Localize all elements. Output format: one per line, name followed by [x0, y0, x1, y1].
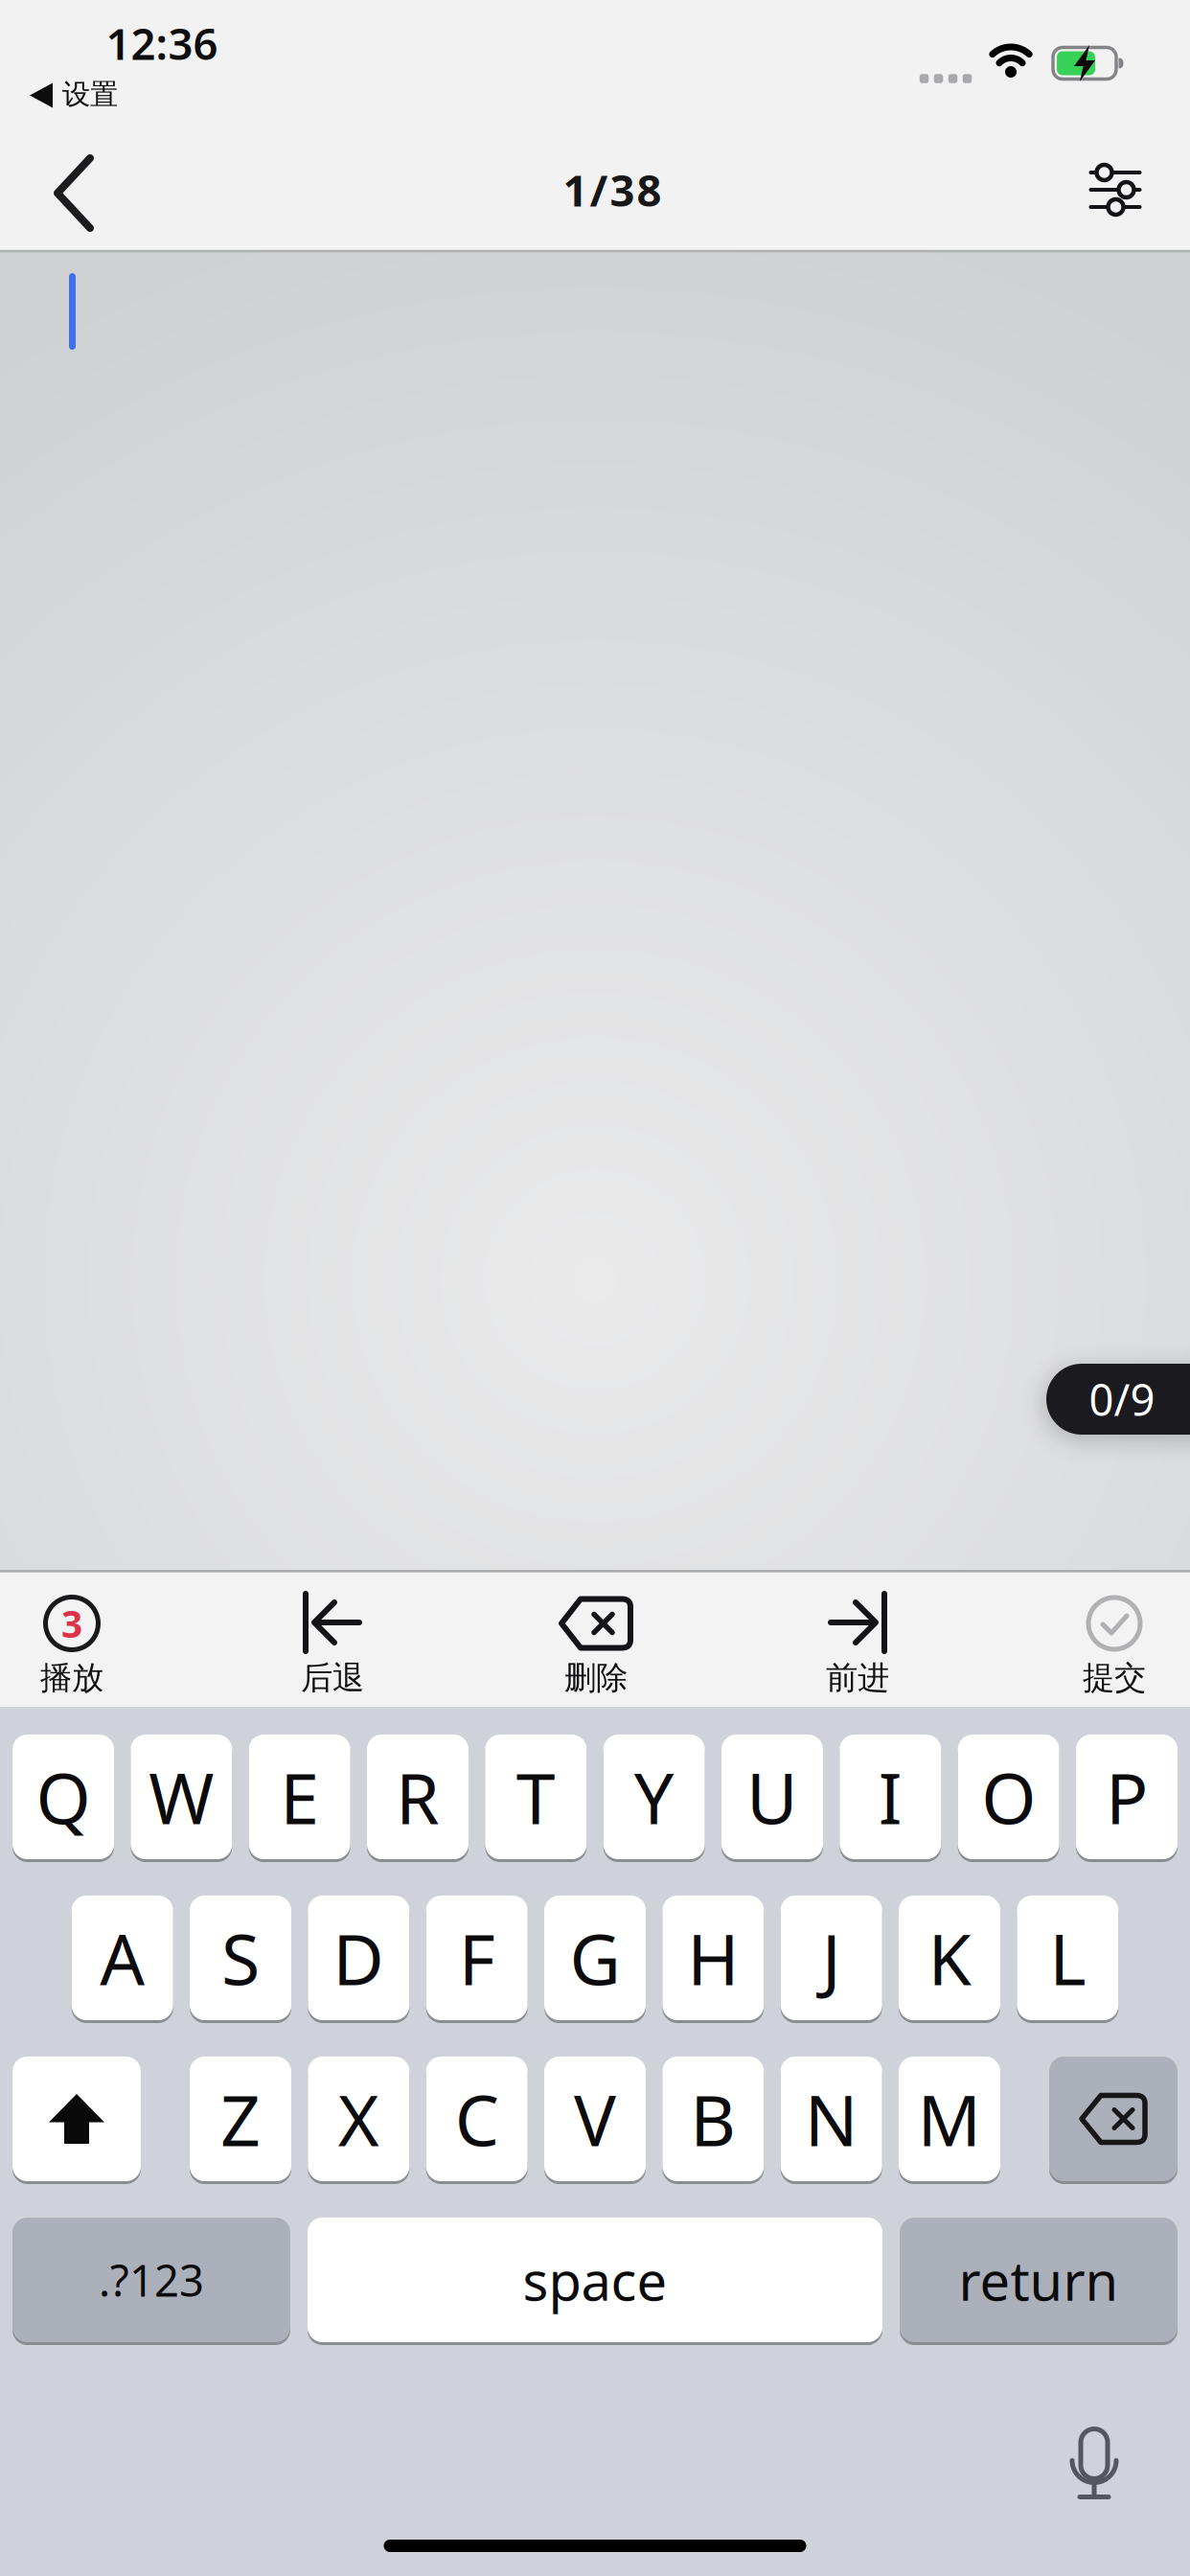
staticText: L	[1049, 1911, 1086, 2005]
button[interactable]: A	[72, 1896, 173, 2020]
button[interactable]: C	[426, 2057, 528, 2181]
button[interactable]: 前进	[767, 1572, 949, 1706]
staticText: M	[917, 2072, 982, 2166]
button[interactable]: Shift	[12, 2057, 141, 2181]
staticText: N	[804, 2072, 858, 2166]
button[interactable]: Dictation	[1072, 2429, 1116, 2499]
staticText: P	[1106, 1750, 1148, 1844]
button[interactable]: H	[662, 1896, 764, 2020]
staticText: U	[746, 1750, 798, 1844]
staticText: Q	[36, 1750, 91, 1844]
button[interactable]: return	[900, 2218, 1178, 2342]
staticText: 3	[61, 1599, 82, 1648]
staticText: A	[100, 1911, 145, 2005]
button[interactable]: R	[367, 1735, 469, 1859]
button[interactable]: J	[781, 1896, 882, 2020]
staticText: 0/9	[1089, 1370, 1155, 1428]
staticText: 前进	[826, 1658, 889, 1698]
staticText: K	[928, 1911, 971, 2005]
button[interactable]: B	[662, 2057, 764, 2181]
button[interactable]: D	[308, 1896, 410, 2020]
button[interactable]: V	[544, 2057, 646, 2181]
button[interactable]: 后退	[241, 1572, 423, 1706]
staticText: H	[687, 1911, 739, 2005]
button[interactable]: U	[721, 1735, 823, 1859]
staticText: 播放	[40, 1658, 103, 1698]
button[interactable]: N	[780, 2057, 882, 2181]
staticText: 设置	[62, 77, 118, 112]
staticText: space	[523, 2244, 667, 2316]
button[interactable]: .?123	[12, 2218, 290, 2342]
button[interactable]: L	[1017, 1896, 1118, 2020]
staticText: X	[338, 2072, 379, 2166]
button[interactable]: 设置选项	[1091, 168, 1140, 212]
staticText: D	[333, 1911, 385, 2005]
staticText: R	[396, 1750, 440, 1844]
staticText: return	[959, 2244, 1119, 2316]
button[interactable]: O	[958, 1735, 1059, 1859]
staticText: 1/38	[563, 161, 662, 219]
button[interactable]: T	[485, 1735, 587, 1859]
button[interactable]: 删除	[505, 1572, 687, 1706]
staticText: V	[574, 2072, 616, 2166]
staticText: C	[455, 2072, 499, 2166]
button[interactable]: Y	[603, 1735, 705, 1859]
staticText: S	[221, 1911, 260, 2005]
staticText: 12:36	[106, 14, 218, 72]
staticText: G	[570, 1911, 620, 2005]
button[interactable]: Q	[12, 1735, 114, 1859]
button[interactable]: I	[840, 1735, 941, 1859]
staticText: E	[280, 1750, 319, 1844]
staticText: 提交	[1083, 1658, 1146, 1698]
button[interactable]: 返回	[57, 158, 92, 229]
button[interactable]: G	[544, 1896, 646, 2020]
button[interactable]: 返回设置	[26, 81, 126, 108]
staticText: 删除	[564, 1658, 628, 1698]
button[interactable]: S	[190, 1896, 291, 2020]
button[interactable]: X	[308, 2057, 409, 2181]
staticText: .?123	[99, 2251, 204, 2309]
button[interactable]: space	[308, 2218, 882, 2342]
staticText: J	[822, 1911, 841, 2005]
staticText: T	[516, 1750, 556, 1844]
staticText: Y	[634, 1750, 674, 1844]
button[interactable]: M	[899, 2057, 1000, 2181]
staticText: B	[690, 2072, 736, 2166]
button[interactable]: 提交	[1023, 1572, 1190, 1706]
staticText: 后退	[301, 1658, 364, 1698]
staticText: I	[878, 1750, 902, 1844]
button[interactable]: P	[1076, 1735, 1178, 1859]
button[interactable]: W	[131, 1735, 232, 1859]
button[interactable]: K	[899, 1896, 1000, 2020]
staticText: F	[459, 1911, 495, 2005]
button[interactable]: F	[426, 1896, 528, 2020]
button[interactable]: Z	[190, 2057, 291, 2181]
button[interactable]: Delete	[1049, 2057, 1178, 2181]
staticText: W	[149, 1750, 214, 1844]
staticText: Z	[220, 2072, 261, 2166]
staticText: O	[981, 1750, 1036, 1844]
button[interactable]: E	[249, 1735, 350, 1859]
button[interactable]: 3	[0, 1572, 163, 1706]
